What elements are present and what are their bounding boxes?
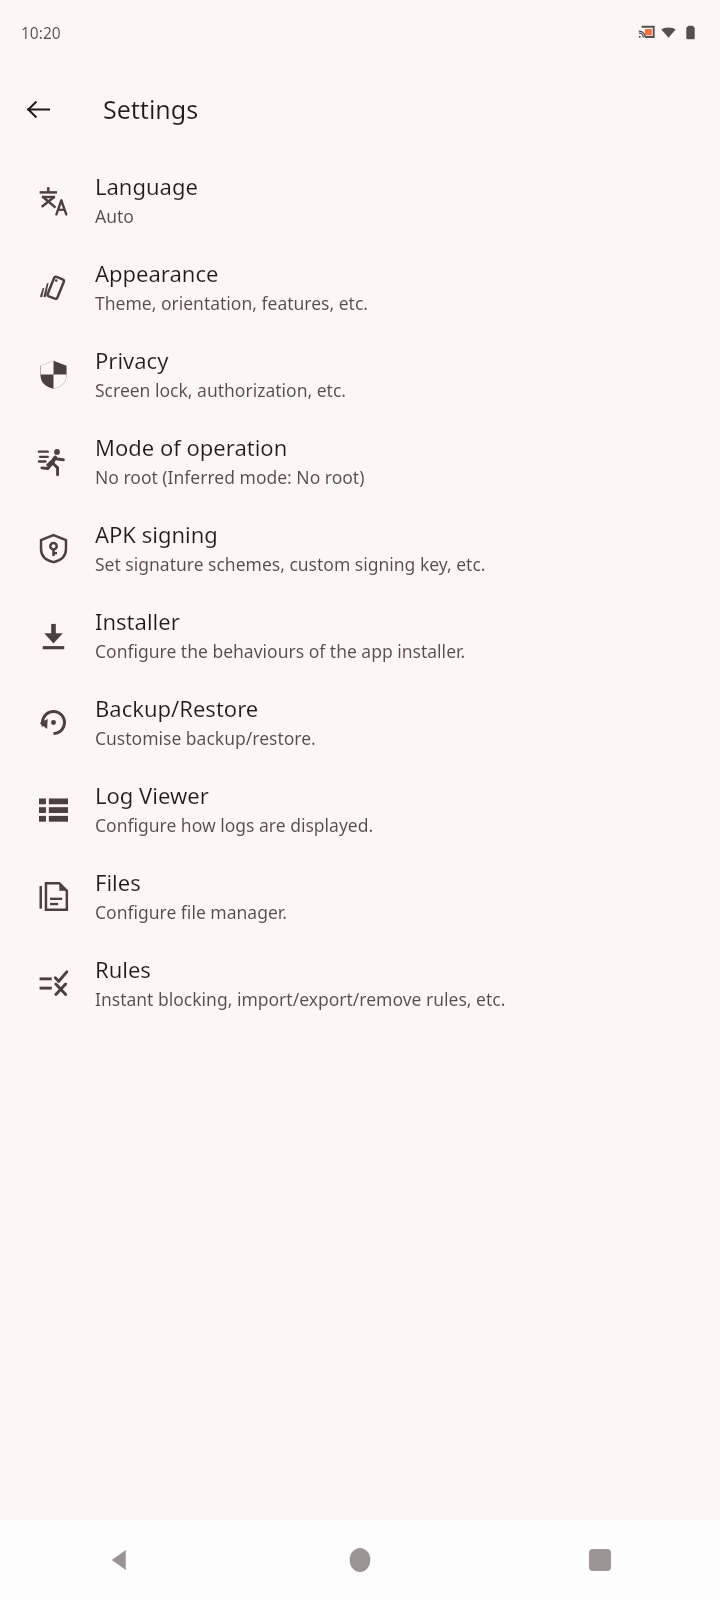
button[interactable]: Mode of operation: [0, 417, 720, 504]
button[interactable]: Back: [14, 85, 62, 133]
button[interactable]: Home: [240, 1520, 480, 1600]
button[interactable]: Back: [0, 1520, 240, 1600]
staticText: Customise backup/restore.: [95, 726, 316, 750]
staticText: Instant blocking, import/export/remove r…: [95, 987, 506, 1011]
staticText: Privacy: [95, 345, 169, 375]
button[interactable]: Appearance: [0, 243, 720, 330]
staticText: Configure file manager.: [95, 900, 287, 924]
staticText: Files: [95, 867, 141, 897]
button[interactable]: Recents: [480, 1520, 720, 1600]
staticText: APK signing: [95, 519, 218, 549]
staticText: Configure how logs are displayed.: [95, 813, 374, 837]
staticText: Installer: [95, 606, 180, 636]
staticText: Theme, orientation, features, etc.: [95, 291, 368, 315]
button[interactable]: Rules: [0, 939, 720, 1026]
staticText: Appearance: [95, 258, 219, 288]
staticText: Set signature schemes, custom signing ke…: [95, 552, 486, 576]
staticText: 10:20: [21, 22, 61, 43]
button[interactable]: Backup/Restore: [0, 678, 720, 765]
staticText: Log Viewer: [95, 780, 209, 810]
staticText: Auto: [95, 204, 134, 228]
button[interactable]: Log Viewer: [0, 765, 720, 852]
staticText: Screen lock, authorization, etc.: [95, 378, 346, 402]
staticText: Rules: [95, 954, 151, 984]
button[interactable]: Files: [0, 852, 720, 939]
staticText: Settings: [103, 92, 199, 126]
button[interactable]: Installer: [0, 591, 720, 678]
staticText: No root (Inferred mode: No root): [95, 465, 365, 489]
staticText: Configure the behaviours of the app inst…: [95, 639, 466, 663]
button[interactable]: Language: [0, 156, 720, 243]
staticText: Backup/Restore: [95, 693, 259, 723]
staticText: Mode of operation: [95, 432, 288, 462]
staticText: Language: [95, 171, 198, 201]
button[interactable]: Privacy: [0, 330, 720, 417]
button[interactable]: APK signing: [0, 504, 720, 591]
